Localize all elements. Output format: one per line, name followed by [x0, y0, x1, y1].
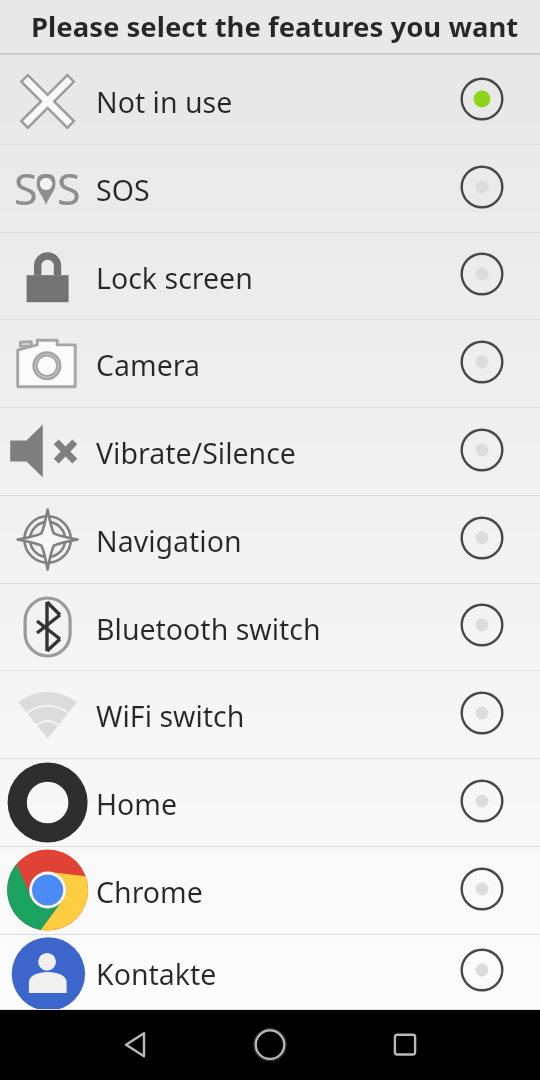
button[interactable]: Vibrate/Silence — [0, 408, 540, 496]
button[interactable]: WiFi switch — [0, 671, 540, 759]
button[interactable]: Home — [240, 1015, 300, 1075]
staticText: WiFi switch — [96, 697, 245, 736]
button[interactable]: Kontakte — [0, 935, 540, 1010]
staticText: Please select the features you want — [31, 8, 519, 45]
button[interactable]: Recents — [375, 1015, 435, 1075]
button[interactable]: Bluetooth switch — [0, 584, 540, 671]
staticText: Navigation — [96, 522, 242, 561]
button[interactable]: Not in use — [0, 57, 540, 145]
staticText: S — [14, 159, 38, 218]
staticText: Bluetooth switch — [96, 610, 321, 649]
button[interactable]: Lock screen — [0, 233, 540, 320]
staticText: SOS — [96, 171, 150, 210]
staticText: Chrome — [96, 873, 203, 912]
button[interactable]: Chrome — [0, 847, 540, 935]
button[interactable]: Back — [105, 1015, 165, 1075]
button[interactable]: S — [0, 145, 540, 233]
staticText: S — [57, 159, 81, 218]
staticText: Kontakte — [96, 955, 217, 994]
button[interactable]: Home — [0, 759, 540, 847]
staticText: Vibrate/Silence — [96, 434, 296, 473]
staticText: Camera — [96, 346, 200, 385]
staticText: Home — [96, 785, 178, 824]
staticText: Not in use — [96, 83, 233, 122]
staticText: Lock screen — [96, 259, 253, 298]
button[interactable]: Camera — [0, 320, 540, 408]
button[interactable]: Navigation — [0, 496, 540, 584]
